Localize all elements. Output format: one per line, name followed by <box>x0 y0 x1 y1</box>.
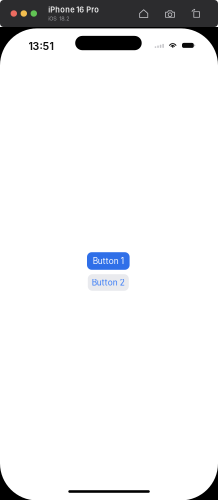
button[interactable]: Close window <box>11 10 17 17</box>
button[interactable]: Button 2 <box>88 274 129 291</box>
button[interactable]: Button 1 <box>87 252 130 270</box>
button[interactable]: Rotate <box>191 9 200 18</box>
staticText: Button 2 <box>92 277 125 287</box>
button[interactable]: Screenshot <box>165 9 175 18</box>
button[interactable]: Zoom window <box>31 10 37 17</box>
button[interactable]: Home <box>139 9 148 18</box>
staticText: iOS 18.2 <box>48 15 69 22</box>
staticText: Button 1 <box>93 256 124 266</box>
staticText: iPhone 16 Pro <box>48 5 99 14</box>
button[interactable]: Minimize window <box>21 10 27 17</box>
staticText: 13:51 <box>28 40 53 52</box>
